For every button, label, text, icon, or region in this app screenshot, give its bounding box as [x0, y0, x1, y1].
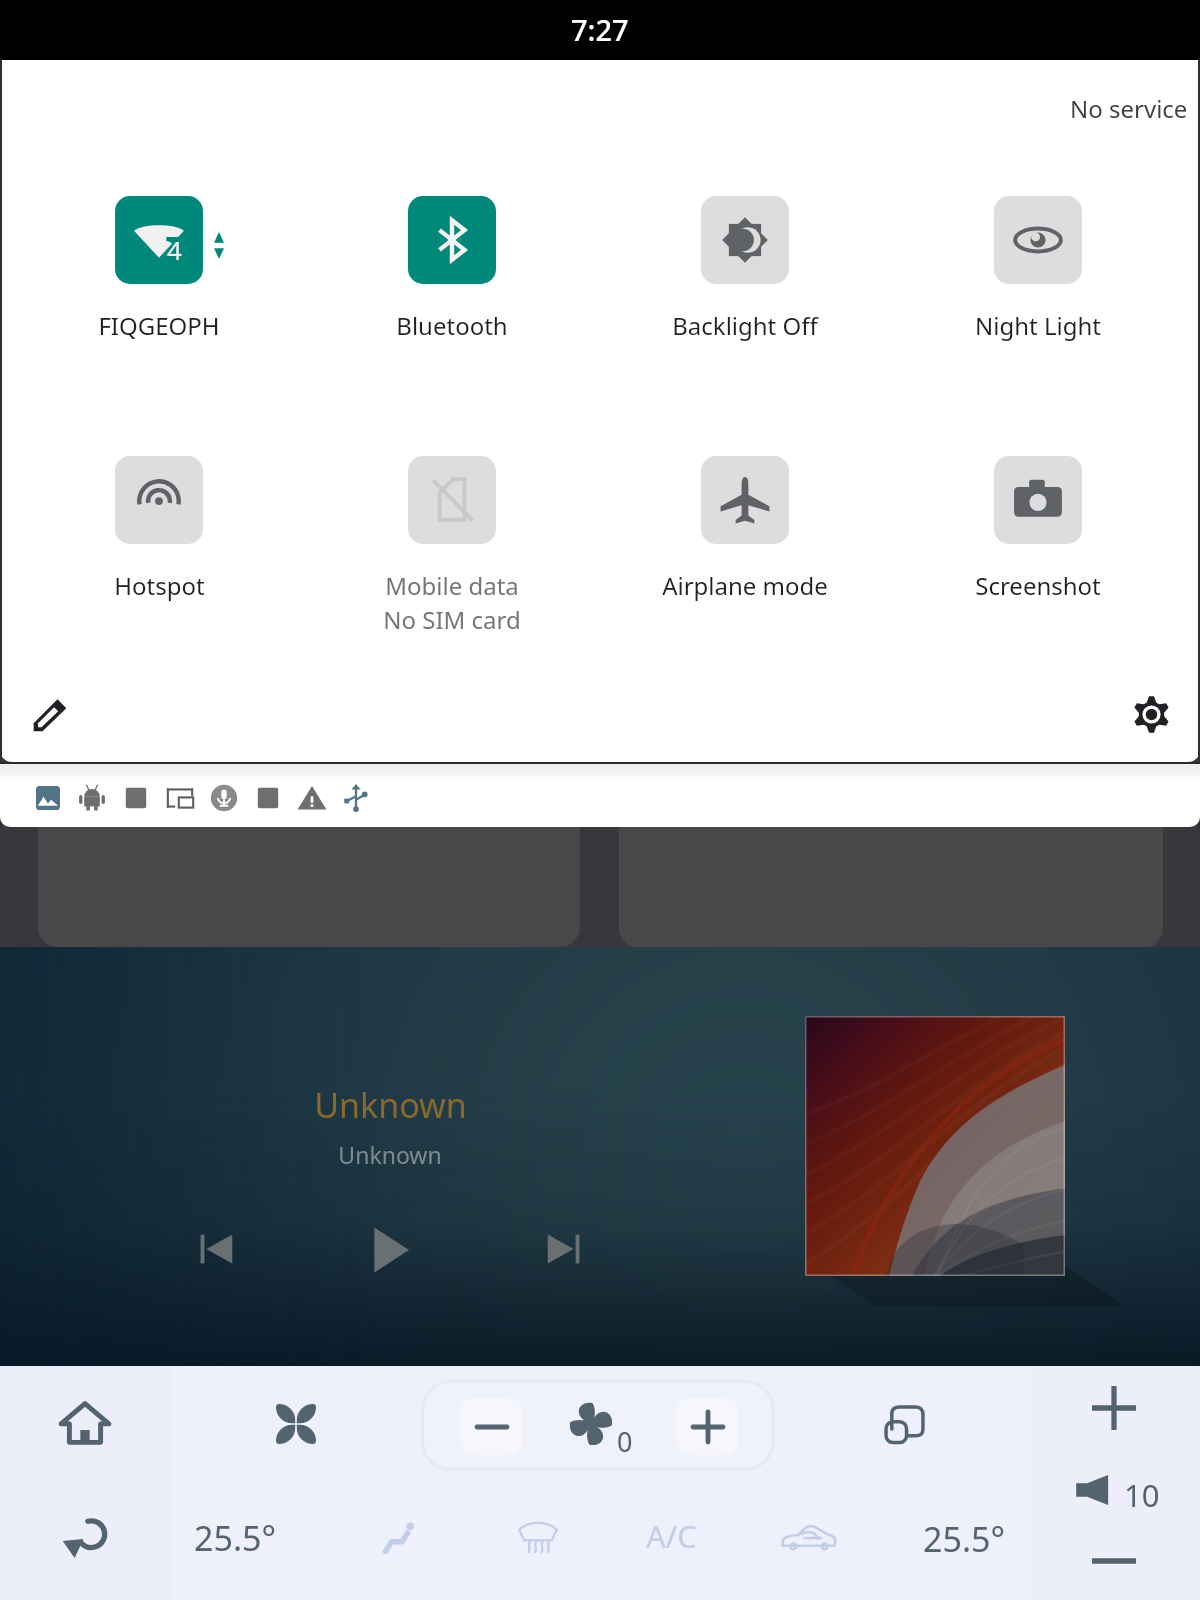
button[interactable]: Recent apps	[878, 1398, 930, 1450]
button[interactable]: Fan speed down	[460, 1398, 523, 1455]
button[interactable]: Apps	[270, 1398, 322, 1450]
button[interactable]: Settings	[1133, 696, 1170, 733]
button[interactable]: 4	[34, 196, 284, 346]
button[interactable]: 25.5°	[179, 1509, 279, 1565]
staticText: 25.5°	[194, 1515, 277, 1561]
staticText: 0	[617, 1423, 633, 1460]
staticText: Night Light	[975, 309, 1101, 342]
button[interactable]: Mobile data	[327, 456, 577, 606]
staticText: Hotspot	[114, 569, 205, 602]
staticText: A/C	[646, 1515, 697, 1557]
staticText: 4	[167, 232, 182, 267]
button[interactable]: Fan speed up	[676, 1398, 739, 1455]
staticText: 7:27	[571, 10, 629, 49]
staticText: Backlight Off	[672, 309, 818, 342]
button[interactable]: Back	[0, 1483, 172, 1600]
button[interactable]: Hotspot	[34, 456, 284, 606]
staticText: 10	[1124, 1474, 1160, 1516]
button[interactable]: Next track	[542, 1225, 590, 1273]
button[interactable]: Screenshot	[913, 456, 1163, 606]
staticText: Screenshot	[975, 569, 1101, 602]
button[interactable]: Airplane mode	[620, 456, 870, 606]
button[interactable]: Rear defrost	[518, 1520, 558, 1553]
staticText: Airplane mode	[662, 569, 828, 602]
button[interactable]: Volume up	[1027, 1366, 1200, 1450]
button[interactable]: Seat heater	[383, 1522, 417, 1554]
button[interactable]: Play	[362, 1222, 418, 1278]
staticText: No service	[1070, 92, 1188, 125]
staticText: Bluetooth	[396, 309, 508, 342]
button[interactable]: Air recirculation	[781, 1524, 837, 1552]
button[interactable]: Home	[0, 1366, 172, 1483]
staticText: FIQGEOPH	[98, 309, 220, 342]
button[interactable]: Edit tiles	[33, 698, 67, 732]
button[interactable]: Backlight Off	[620, 196, 870, 346]
button[interactable]: Bluetooth	[327, 196, 577, 346]
button[interactable]: Volume down	[1027, 1521, 1200, 1600]
button[interactable]: 25.5°	[908, 1509, 1008, 1565]
button[interactable]: Night Light	[913, 196, 1163, 346]
button[interactable]: A/C	[630, 1508, 710, 1564]
staticText: Mobile data	[385, 569, 519, 602]
button[interactable]: Previous track	[190, 1225, 238, 1273]
staticText: No SIM card	[383, 603, 521, 636]
staticText: Unknown	[338, 1139, 442, 1170]
staticText: 25.5°	[923, 1516, 1006, 1562]
staticText: Unknown	[314, 1082, 467, 1128]
